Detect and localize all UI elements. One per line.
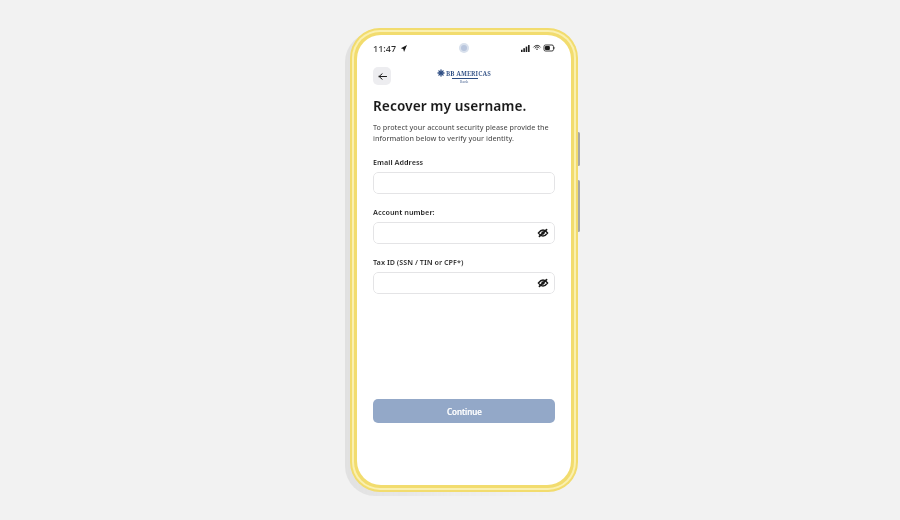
button[interactable]: Back	[373, 67, 391, 85]
staticText: BB AMERICAS	[446, 69, 491, 77]
staticText: 11:47	[373, 42, 397, 54]
staticText: Account number:	[373, 207, 435, 217]
staticText: Tax ID (SSN / TIN or CPF*)	[373, 257, 464, 267]
button[interactable]: Show value	[373, 272, 555, 294]
staticText: Bank	[460, 79, 469, 84]
staticText: Continue	[447, 406, 482, 417]
staticText: Recover my username.	[373, 97, 527, 115]
button[interactable]: Show value	[373, 222, 555, 244]
button[interactable]: Show value	[538, 278, 548, 288]
button[interactable]: Continue	[373, 399, 555, 423]
button[interactable]	[373, 172, 555, 194]
staticText: Email Address	[373, 157, 424, 167]
button[interactable]: Show value	[538, 228, 548, 238]
staticText: To protect your account security please …	[373, 122, 549, 143]
